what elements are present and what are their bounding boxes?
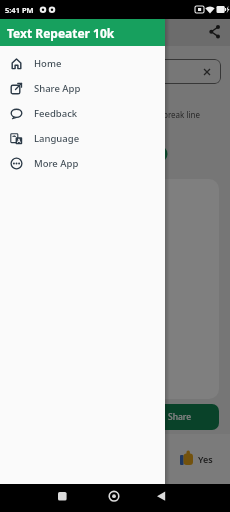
staticText: break line	[163, 109, 200, 120]
staticText: Share App	[34, 82, 81, 95]
button[interactable]	[50, 486, 76, 510]
button[interactable]: More App	[0, 151, 165, 176]
button[interactable]	[149, 486, 175, 510]
staticText: Share	[168, 411, 192, 423]
button[interactable]: Language	[0, 126, 165, 151]
staticText: 5:41 PM	[5, 5, 34, 15]
staticText: Language	[34, 132, 80, 145]
button[interactable]	[12, 59, 221, 84]
staticText: Home	[34, 57, 62, 70]
button[interactable]	[102, 486, 128, 510]
staticText: Feedback	[34, 107, 78, 120]
button[interactable]: Share App	[0, 76, 165, 101]
button[interactable]: Feedback	[0, 101, 165, 126]
button[interactable]: Home	[0, 51, 165, 76]
staticText: Text Repeater 10k	[7, 25, 115, 41]
button[interactable]: Yes	[198, 453, 213, 465]
button[interactable]: Share	[141, 404, 219, 430]
staticText: More App	[34, 157, 79, 170]
